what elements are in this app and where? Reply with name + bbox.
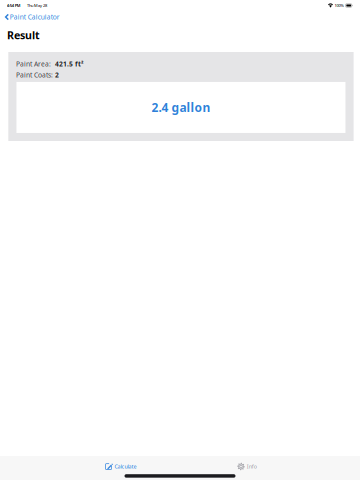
staticText: 4:54 PM (7, 3, 21, 8)
button[interactable]: Calculate (101, 460, 140, 473)
staticText: 421.5 ft² (55, 59, 84, 68)
staticText: 2 (55, 70, 59, 79)
staticText: Paint Coats: (16, 70, 53, 79)
staticText: Paint Calculator (10, 13, 60, 21)
staticText: 100% (334, 3, 343, 8)
button[interactable]: Info (233, 460, 261, 473)
staticText: Calculate (114, 463, 136, 470)
staticText: 2.4 gallon (151, 99, 210, 115)
staticText: Thu May 28 (27, 3, 47, 8)
button[interactable]: Paint Calculator (0, 11, 65, 23)
staticText: Result (7, 28, 40, 42)
staticText: Paint Area: (16, 59, 51, 68)
staticText: Info (247, 463, 257, 470)
